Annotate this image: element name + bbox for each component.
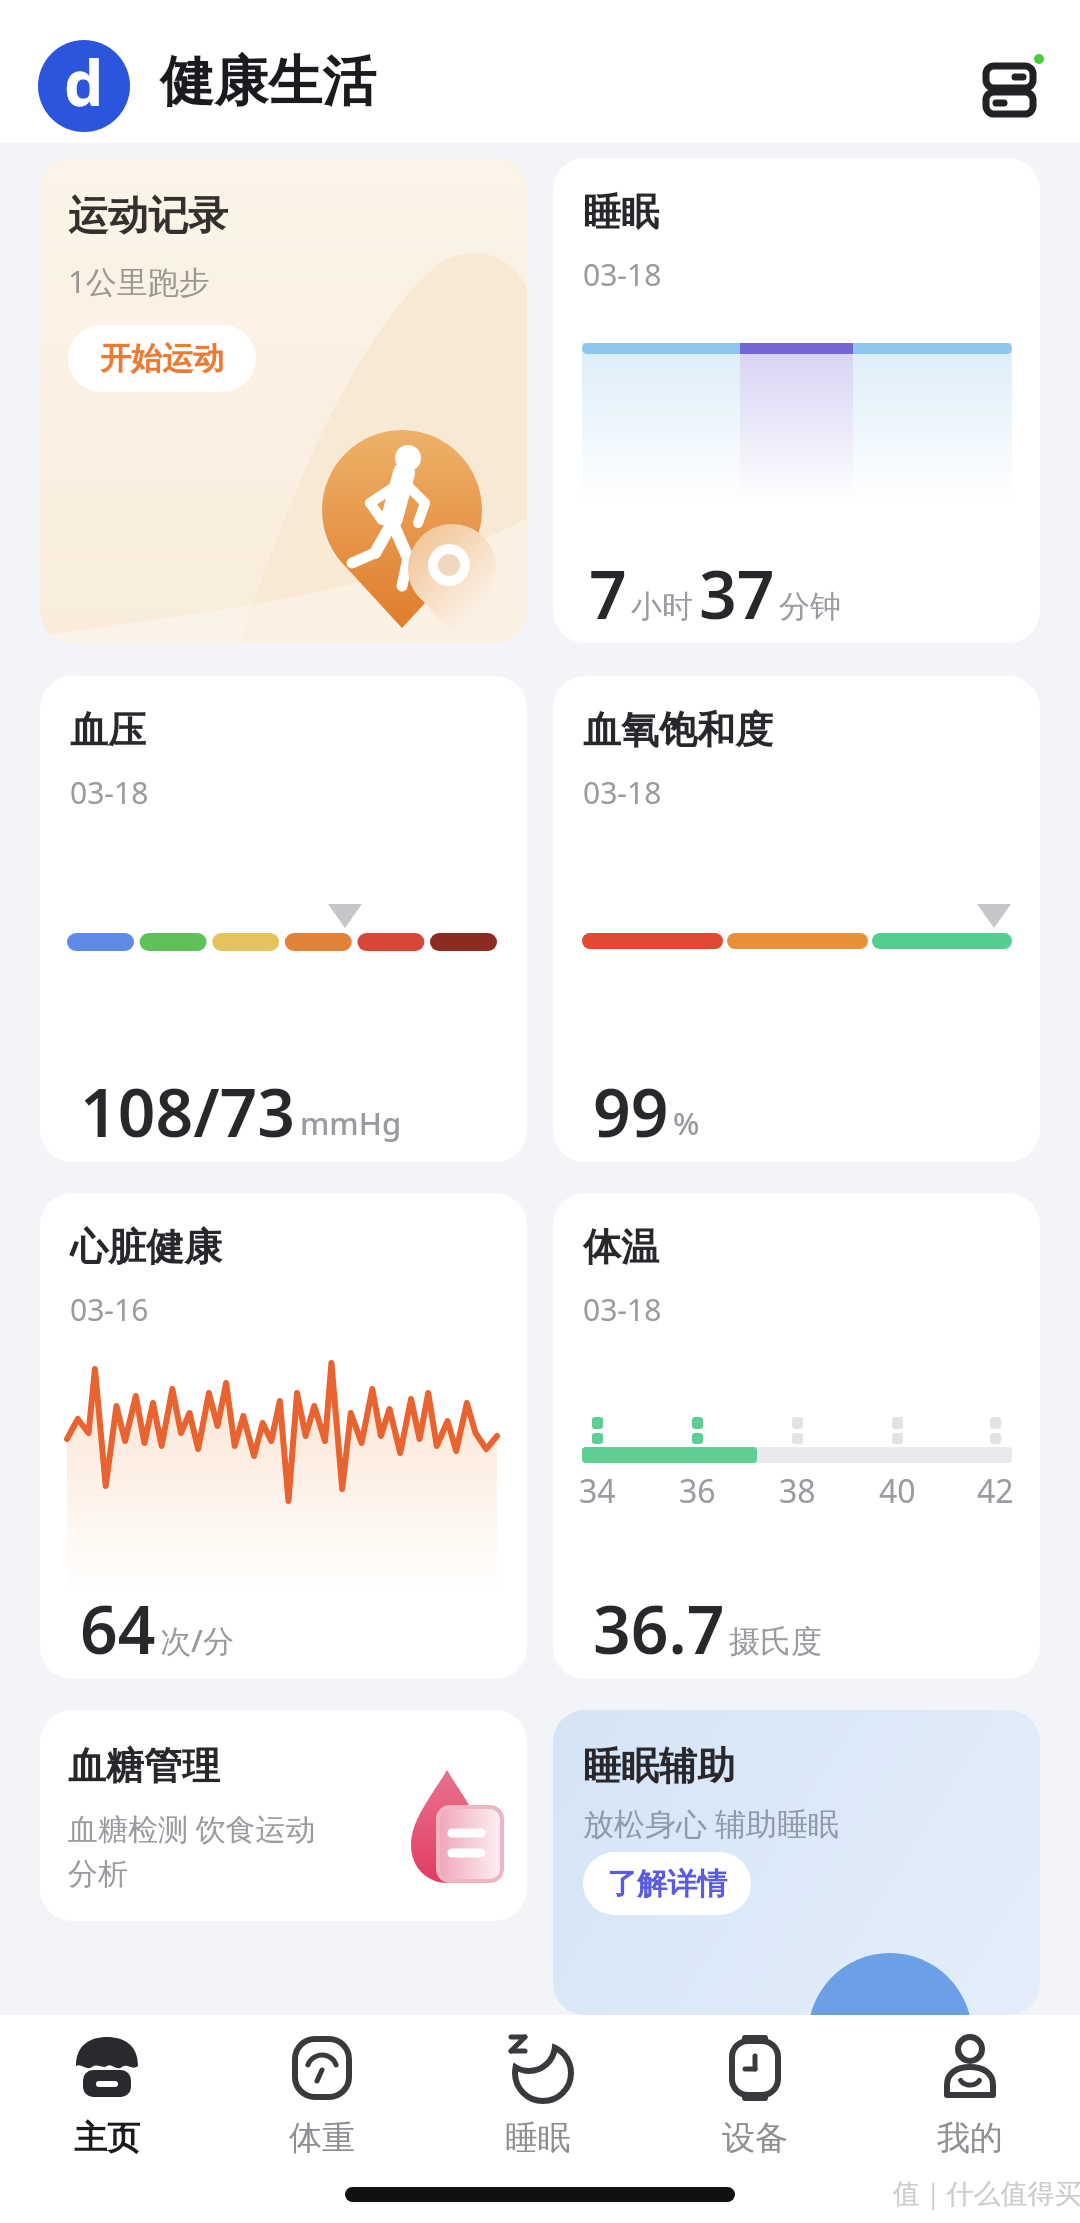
- staticText: 42: [977, 1469, 1014, 1513]
- button[interactable]: 心脏健康: [40, 1193, 527, 1679]
- staticText: 睡眠辅助: [583, 1742, 735, 1790]
- staticText: 次/分: [160, 1619, 234, 1661]
- staticText: 睡眠: [505, 2117, 571, 2159]
- button[interactable]: 体重: [242, 2023, 402, 2163]
- staticText: 小时: [631, 587, 693, 626]
- staticText: 36.7: [593, 1583, 725, 1673]
- staticText: 分钟: [779, 587, 841, 626]
- staticText: 03-16: [70, 1289, 149, 1330]
- staticText: 03-18: [70, 772, 149, 813]
- staticText: 睡眠: [583, 188, 659, 236]
- staticText: 运动记录: [68, 190, 228, 240]
- button[interactable]: 主页: [27, 2023, 187, 2163]
- staticText: 我的: [937, 2117, 1003, 2159]
- button[interactable]: 睡眠: [458, 2023, 618, 2163]
- button[interactable]: 设备: [675, 2023, 835, 2163]
- button[interactable]: 睡眠辅助: [553, 1710, 1040, 2015]
- staticText: 心脏健康: [70, 1223, 222, 1271]
- staticText: 设备: [722, 2117, 788, 2159]
- staticText: 摄氏度: [729, 1622, 822, 1661]
- staticText: 值｜什么值得买: [893, 2177, 1080, 2211]
- staticText: 40: [879, 1469, 916, 1513]
- staticText: 1公里跑步: [68, 260, 210, 302]
- staticText: 血压: [70, 706, 146, 754]
- staticText: 34: [579, 1469, 616, 1513]
- staticText: 99: [593, 1066, 669, 1156]
- staticText: 健康生活: [160, 48, 376, 116]
- button[interactable]: [975, 50, 1055, 130]
- staticText: 开始运动: [100, 339, 224, 378]
- button[interactable]: 血氧饱和度: [553, 676, 1040, 1162]
- staticText: 108/73: [80, 1066, 296, 1156]
- button[interactable]: d: [38, 40, 130, 132]
- staticText: 血氧饱和度: [583, 706, 773, 754]
- button[interactable]: 运动记录: [40, 158, 527, 643]
- staticText: 37: [699, 548, 775, 638]
- staticText: 放松身心 辅助睡眠: [583, 1802, 840, 1844]
- button[interactable]: 体温: [553, 1193, 1040, 1679]
- button[interactable]: 了解详情: [583, 1852, 751, 1915]
- staticText: 03-18: [583, 772, 662, 813]
- staticText: 血糖检测 饮食运动 分析: [68, 1808, 316, 1893]
- staticText: mmHg: [300, 1102, 402, 1144]
- button[interactable]: 血压: [40, 676, 527, 1162]
- staticText: 血糖管理: [68, 1742, 220, 1790]
- staticText: %: [673, 1102, 700, 1144]
- button[interactable]: 我的: [890, 2023, 1050, 2163]
- staticText: 体重: [289, 2117, 355, 2159]
- button[interactable]: 睡眠: [553, 158, 1040, 643]
- staticText: 03-18: [583, 1289, 662, 1330]
- staticText: 38: [779, 1469, 816, 1513]
- button[interactable]: 血糖管理: [40, 1710, 527, 1921]
- staticText: 64: [80, 1583, 156, 1673]
- button[interactable]: 开始运动: [68, 325, 256, 392]
- staticText: 03-18: [583, 254, 662, 295]
- staticText: 了解详情: [607, 1865, 727, 1903]
- staticText: 体温: [583, 1223, 659, 1271]
- staticText: d: [64, 40, 104, 124]
- staticText: 主页: [74, 2117, 140, 2159]
- staticText: 7: [589, 548, 627, 638]
- staticText: 36: [679, 1469, 716, 1513]
